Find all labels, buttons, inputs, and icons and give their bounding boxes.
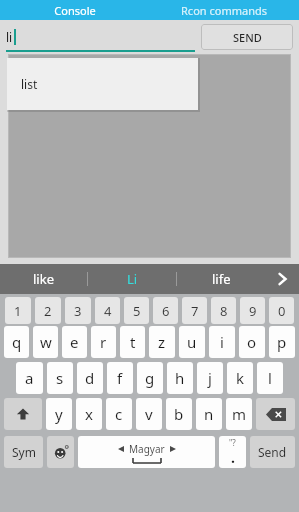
staticText: Magyar	[129, 442, 165, 456]
staticText: h	[175, 368, 185, 388]
staticText: v	[145, 404, 153, 424]
staticText: g	[145, 368, 155, 388]
staticText: l	[268, 368, 272, 388]
button[interactable]: u	[179, 326, 205, 358]
staticText: Sym	[12, 444, 36, 460]
button[interactable]: 9	[240, 297, 265, 324]
button[interactable]: 6	[153, 297, 178, 324]
button[interactable]: Shift	[4, 398, 42, 430]
staticText: c	[115, 404, 123, 424]
button[interactable]: x	[76, 398, 102, 430]
button[interactable]: 7	[182, 297, 207, 324]
button[interactable]: a	[16, 362, 43, 394]
button[interactable]: k	[227, 362, 253, 394]
staticText: d	[85, 368, 95, 388]
staticText: life	[212, 270, 231, 288]
button[interactable]: s	[47, 362, 73, 394]
button[interactable]: r	[91, 326, 116, 358]
staticText: Console	[54, 3, 96, 18]
button[interactable]: d	[77, 362, 103, 394]
staticText: z	[158, 332, 166, 352]
button[interactable]: h	[167, 362, 193, 394]
button[interactable]: t	[120, 326, 145, 358]
staticText: .	[231, 448, 235, 467]
button[interactable]: w	[33, 326, 58, 358]
button[interactable]: list	[7, 58, 198, 110]
button[interactable]: 4	[95, 297, 120, 324]
button[interactable]	[8, 54, 291, 258]
staticText: 2	[44, 302, 52, 320]
button[interactable]: SEND	[201, 24, 293, 50]
button[interactable]: o	[239, 326, 265, 358]
staticText: 5	[133, 302, 141, 320]
button[interactable]: 3	[65, 297, 91, 324]
button[interactable]: 1	[5, 297, 31, 324]
staticText: like	[33, 270, 54, 288]
staticText: li	[6, 29, 13, 45]
staticText: Send	[258, 444, 287, 460]
staticText: 6	[162, 302, 170, 320]
staticText: 8	[220, 302, 228, 320]
staticText: e	[70, 332, 79, 352]
staticText: Li	[127, 270, 138, 288]
staticText: m	[232, 404, 247, 424]
button[interactable]: Console	[0, 0, 149, 20]
button[interactable]: life	[177, 264, 265, 294]
staticText: r	[100, 332, 107, 352]
staticText: p	[277, 332, 287, 352]
button[interactable]: Emoji	[47, 436, 74, 468]
staticText: 4	[104, 302, 112, 320]
button[interactable]: Backspace	[256, 398, 295, 430]
staticText: k	[236, 368, 245, 388]
staticText: Rcon commands	[181, 3, 267, 18]
staticText: 0	[278, 302, 286, 320]
button[interactable]: Li	[88, 264, 176, 294]
button[interactable]: Space, Magyar	[78, 436, 215, 468]
button[interactable]: 0	[269, 297, 294, 324]
button[interactable]: j	[197, 362, 223, 394]
button[interactable]: y	[46, 398, 72, 430]
staticText: u	[187, 332, 197, 352]
staticText: i	[220, 332, 224, 352]
staticText: b	[174, 404, 184, 424]
button[interactable]: m	[226, 398, 252, 430]
staticText: f	[117, 368, 123, 388]
staticText: list	[21, 76, 38, 92]
button[interactable]: Sym	[4, 436, 43, 468]
button[interactable]: li	[6, 22, 195, 52]
button[interactable]: z	[149, 326, 175, 358]
staticText: 9	[249, 302, 257, 320]
button[interactable]: g	[137, 362, 163, 394]
staticText: y	[55, 404, 63, 424]
button[interactable]: i	[209, 326, 235, 358]
button[interactable]: p	[269, 326, 295, 358]
button[interactable]: v	[136, 398, 162, 430]
staticText: SEND	[233, 30, 262, 45]
button[interactable]: 8	[211, 297, 236, 324]
button[interactable]: e	[62, 326, 87, 358]
staticText: t	[130, 332, 136, 352]
staticText: x	[85, 404, 93, 424]
button[interactable]: 5	[124, 297, 149, 324]
button[interactable]: like	[0, 264, 87, 294]
button[interactable]: Period	[219, 436, 246, 468]
button[interactable]: q	[4, 326, 29, 358]
staticText: 1	[14, 302, 22, 320]
staticText: w	[40, 332, 52, 352]
button[interactable]: f	[107, 362, 133, 394]
staticText: o	[247, 332, 257, 352]
button[interactable]: c	[106, 398, 132, 430]
button[interactable]: b	[166, 398, 192, 430]
button[interactable]: l	[257, 362, 283, 394]
button[interactable]: More suggestions	[265, 264, 299, 294]
button[interactable]: n	[196, 398, 222, 430]
staticText: n	[204, 404, 214, 424]
button[interactable]: 2	[35, 297, 61, 324]
staticText: j	[208, 368, 212, 388]
staticText: a	[25, 368, 34, 388]
button[interactable]: Rcon commands	[149, 0, 299, 20]
staticText: 7	[191, 302, 199, 320]
staticText: q	[12, 332, 22, 352]
staticText: 3	[74, 302, 82, 320]
button[interactable]: Send	[250, 436, 295, 468]
